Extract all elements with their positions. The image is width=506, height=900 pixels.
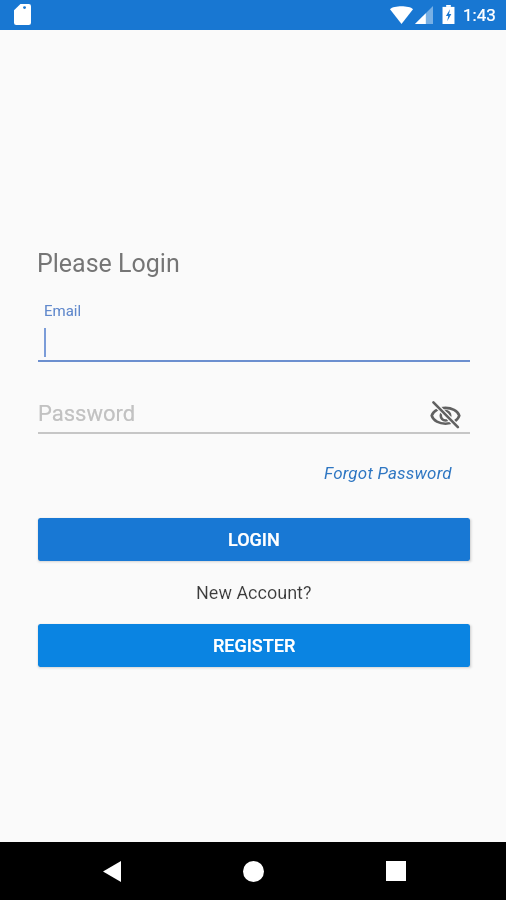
staticText: Forgot Password bbox=[324, 463, 452, 483]
staticText: New Account? bbox=[196, 582, 312, 603]
button[interactable]: Back bbox=[88, 847, 136, 895]
button[interactable]: Forgot Password bbox=[318, 457, 458, 489]
button[interactable]: Show password bbox=[428, 398, 462, 431]
staticText: REGISTER bbox=[213, 635, 296, 656]
button[interactable]: Recent apps bbox=[372, 847, 420, 895]
staticText: 1:43 bbox=[463, 5, 496, 25]
button[interactable]: Email bbox=[38, 300, 470, 362]
button[interactable]: Password bbox=[38, 401, 470, 434]
staticText: Password bbox=[38, 401, 136, 427]
button[interactable]: REGISTER bbox=[38, 624, 470, 667]
button[interactable]: New Account? bbox=[187, 577, 321, 607]
button[interactable]: LOGIN bbox=[38, 518, 470, 561]
button[interactable]: Home bbox=[229, 847, 277, 895]
staticText: LOGIN bbox=[228, 529, 280, 550]
staticText: Email bbox=[44, 302, 82, 320]
staticText: Please Login bbox=[37, 249, 180, 278]
